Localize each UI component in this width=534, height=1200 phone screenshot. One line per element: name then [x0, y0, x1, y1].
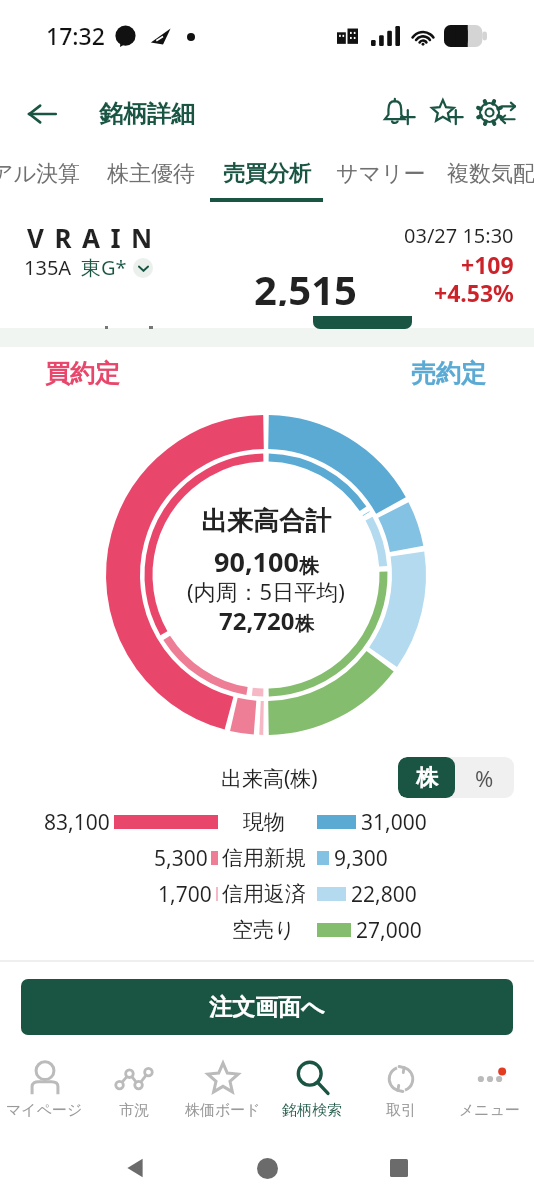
button[interactable]: メニュー	[445, 1045, 534, 1135]
button[interactable]: Change market	[133, 258, 153, 278]
staticText: 31,000	[361, 808, 427, 837]
button[interactable]: Back	[16, 88, 68, 140]
button[interactable]: %	[455, 757, 514, 798]
button[interactable]: 注文画面へ	[21, 979, 513, 1035]
staticText: アル決算	[0, 160, 81, 188]
staticText: 売買分析	[223, 160, 311, 188]
staticText: 銘柄検索	[282, 1101, 342, 1120]
staticText: サマリー	[336, 160, 426, 188]
staticText: 出来高(株)	[221, 764, 318, 793]
staticText: 売約定	[411, 358, 486, 389]
staticText: 銘柄詳細	[99, 99, 195, 129]
button[interactable]: 銘柄検索	[267, 1045, 356, 1135]
staticText: 市況	[119, 1101, 149, 1120]
staticText: 27,000	[356, 916, 422, 945]
button[interactable]: 株価ボード	[178, 1045, 267, 1135]
button[interactable]: 市況	[89, 1045, 178, 1135]
staticText: 株価ボード	[185, 1101, 261, 1120]
staticText: メニュー	[459, 1101, 521, 1120]
button[interactable]: 株	[398, 757, 455, 798]
staticText: 72,720	[219, 604, 295, 637]
staticText: 135A	[24, 254, 72, 281]
staticText: 買約定	[45, 358, 120, 389]
staticText: 東G*	[81, 254, 127, 281]
button[interactable]: Settings	[470, 89, 520, 139]
staticText: 株	[295, 612, 314, 636]
button[interactable]	[327, 155, 431, 203]
button[interactable]	[100, 155, 204, 203]
button[interactable]: Recents	[384, 1153, 414, 1183]
staticText: +109	[461, 249, 514, 280]
button[interactable]: Add price alert	[373, 89, 423, 139]
staticText: 2,515	[254, 262, 357, 316]
button[interactable]	[210, 155, 323, 203]
staticText: 株	[416, 764, 438, 792]
staticText: 空売り	[232, 917, 296, 943]
staticText: 注文画面へ	[209, 993, 325, 1022]
staticText: (内周：5日平均)	[187, 576, 345, 606]
button[interactable]	[0, 155, 88, 203]
staticText: 03/27 15:30	[404, 222, 514, 249]
staticText: 信用返済	[222, 881, 306, 907]
staticText: 17:32	[46, 20, 105, 51]
button[interactable]: Add to watchlist	[421, 89, 471, 139]
staticText: VRAIN	[27, 220, 163, 255]
staticText: %	[475, 763, 494, 793]
staticText: 信用新規	[222, 845, 306, 871]
staticText: 22,800	[351, 880, 417, 909]
staticText: 90,100	[214, 543, 299, 580]
staticText: 83,100	[44, 808, 110, 837]
staticText: 出来高合計	[201, 505, 331, 538]
button[interactable]: Home	[252, 1153, 282, 1183]
button[interactable]: Back	[120, 1153, 150, 1183]
staticText: 5,300	[154, 844, 208, 873]
staticText: 1,700	[158, 880, 212, 909]
button[interactable]: 取引	[356, 1045, 445, 1135]
button[interactable]	[435, 155, 534, 203]
staticText: +4.53%	[434, 277, 514, 308]
staticText: 現物	[243, 809, 285, 835]
button[interactable]: マイページ	[0, 1045, 89, 1135]
staticText: 株	[299, 554, 319, 579]
staticText: マイページ	[6, 1101, 83, 1120]
staticText: 株主優待	[107, 160, 195, 188]
staticText: 取引	[386, 1101, 416, 1120]
staticText: 複数気配	[447, 160, 534, 188]
staticText: 9,300	[334, 844, 388, 873]
